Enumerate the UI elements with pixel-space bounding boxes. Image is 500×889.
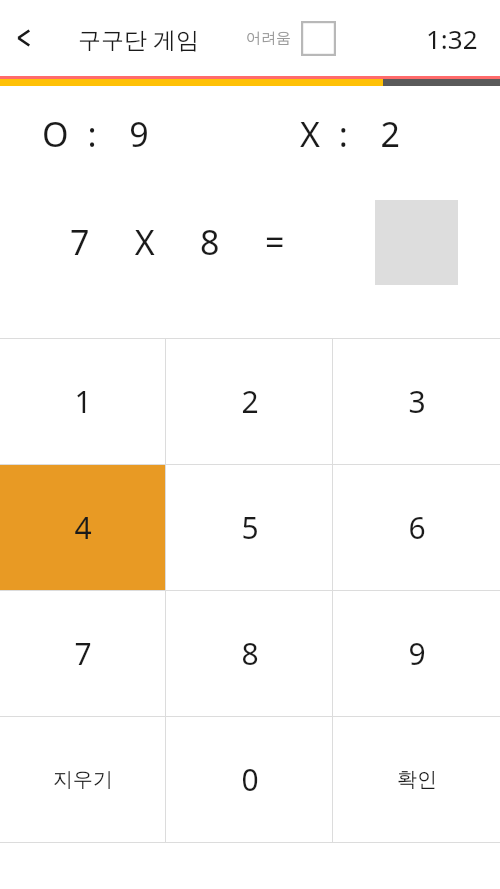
staticText: X : 2 bbox=[300, 111, 406, 157]
button[interactable]: 4 bbox=[0, 465, 166, 590]
button[interactable]: 0 bbox=[166, 717, 333, 842]
staticText: 0 bbox=[241, 759, 259, 800]
staticText: O : 9 bbox=[42, 111, 154, 157]
staticText: 어려움 bbox=[246, 29, 291, 48]
button[interactable]: 지우기 bbox=[0, 717, 166, 842]
button[interactable]: 8 bbox=[166, 591, 333, 716]
staticText: 8 bbox=[241, 633, 259, 674]
button[interactable]: 어려움 bbox=[246, 21, 336, 56]
button[interactable]: 1 bbox=[0, 339, 166, 464]
staticText: 7 X 8 = bbox=[70, 219, 287, 265]
button[interactable]: Back bbox=[2, 16, 46, 60]
staticText: 7 bbox=[74, 633, 92, 674]
button[interactable]: 6 bbox=[333, 465, 500, 590]
staticText: 6 bbox=[408, 507, 426, 548]
button[interactable]: 3 bbox=[333, 339, 500, 464]
button[interactable]: 9 bbox=[333, 591, 500, 716]
staticText: 4 bbox=[74, 507, 92, 548]
staticText: 확인 bbox=[397, 767, 437, 792]
button[interactable]: 확인 bbox=[333, 717, 500, 842]
staticText: 2 bbox=[241, 381, 259, 422]
button[interactable]: 7 bbox=[0, 591, 166, 716]
button[interactable]: 5 bbox=[166, 465, 333, 590]
staticText: 9 bbox=[408, 633, 426, 674]
staticText: 3 bbox=[408, 381, 426, 422]
staticText: 5 bbox=[241, 507, 259, 548]
staticText: 지우기 bbox=[53, 767, 113, 792]
staticText: 구구단 게임 bbox=[78, 23, 199, 54]
button[interactable]: 2 bbox=[166, 339, 333, 464]
staticText: 1:32 bbox=[426, 21, 478, 56]
staticText: 1 bbox=[74, 381, 92, 422]
